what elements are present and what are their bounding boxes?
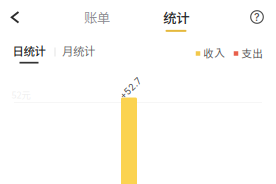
staticText: 支出 (241, 47, 263, 60)
staticText: 月统计 (62, 44, 95, 58)
staticText: 账单 (84, 10, 110, 26)
staticText: 52元 (11, 89, 30, 100)
button[interactable]: Help (243, 3, 271, 31)
button[interactable]: 统计 (152, 7, 200, 35)
staticText: 统计 (163, 10, 189, 26)
button[interactable]: 日统计 (3, 42, 55, 66)
staticText: 日统计 (12, 44, 45, 58)
button[interactable]: 账单 (73, 7, 121, 35)
button[interactable]: 月统计 (52, 42, 104, 66)
button[interactable]: Back (0, 3, 30, 31)
staticText: 收入 (203, 47, 225, 60)
staticText: ? (254, 10, 260, 23)
staticText: +52.7 (117, 83, 143, 94)
